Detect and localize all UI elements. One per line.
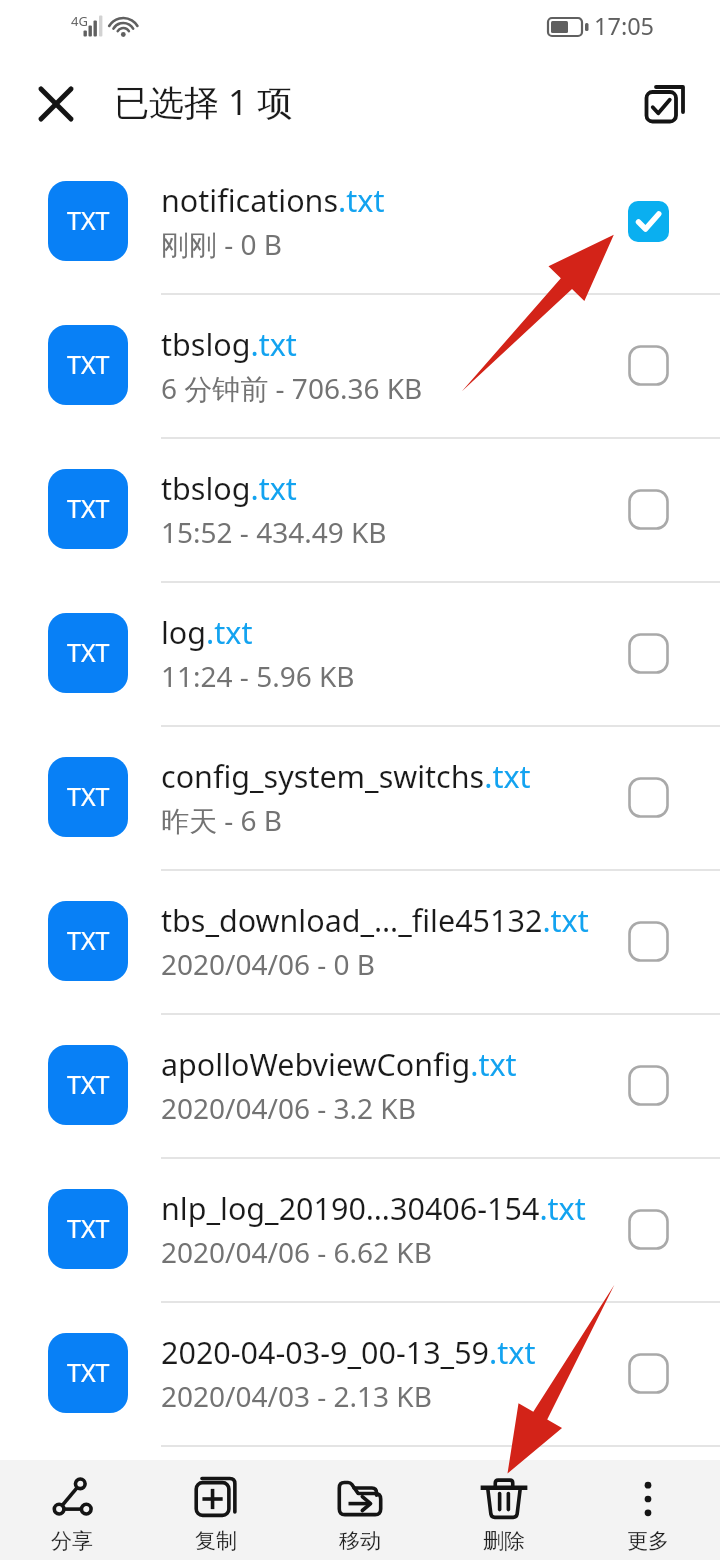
staticText: TXT [67,779,110,813]
staticText: 15:52 - 434.49 KB [161,513,387,551]
staticText: notifications.txt [161,179,385,221]
staticText: TXT [67,347,110,381]
button[interactable]: Select all [633,73,697,137]
staticText: 2020-04-03-9_00-13_59.txt [161,1331,536,1373]
button[interactable]: Select file [608,901,688,981]
staticText: 已选择 1 项 [114,78,293,126]
staticText: tbs_download_…_file45132.txt [161,899,589,941]
staticText: tbslog.txt [161,467,297,509]
staticText: 17:05 [594,10,655,42]
button[interactable]: Close [24,72,88,136]
staticText: 6 分钟前 - 706.36 KB [161,369,423,407]
button[interactable]: Select file [608,325,688,405]
staticText: tbslog.txt [161,323,297,365]
staticText: TXT [67,1355,110,1389]
button[interactable]: Select file [608,1189,688,1269]
button[interactable]: TXT [0,1013,720,1157]
button[interactable]: TXT [0,725,720,869]
staticText: TXT [67,1211,110,1245]
button[interactable]: 分享 [0,1460,144,1560]
button[interactable]: TXT [0,149,720,293]
button[interactable]: TXT [0,1157,720,1301]
button[interactable]: 移动 [288,1460,432,1560]
staticText: TXT [67,203,110,237]
staticText: 分享 [51,1528,93,1554]
staticText: 2020/04/06 - 6.62 KB [161,1233,432,1271]
button[interactable]: Select file [608,757,688,837]
staticText: 删除 [483,1528,525,1554]
button[interactable]: 复制 [144,1460,288,1560]
staticText: 4G [71,12,88,30]
staticText: log.txt [161,611,253,653]
staticText: apolloWebviewConfig.txt [161,1043,517,1085]
staticText: TXT [67,923,110,957]
button[interactable]: Select file [608,613,688,693]
staticText: 2020/04/06 - 3.2 KB [161,1089,416,1127]
button[interactable]: Select file [608,1333,688,1413]
staticText: TXT [67,491,110,525]
button[interactable]: TXT [0,437,720,581]
staticText: TXT [67,635,110,669]
staticText: TXT [67,1067,110,1101]
button[interactable]: 更多 [576,1460,720,1560]
staticText: nlp_log_20190…30406-154.txt [161,1187,586,1229]
button[interactable]: 删除 [432,1460,576,1560]
staticText: config_system_switchs.txt [161,755,531,797]
staticText: 2020/04/03 - 2.13 KB [161,1377,432,1415]
staticText: 11:24 - 5.96 KB [161,657,355,695]
staticText: 2020/04/06 - 0 B [161,945,376,983]
button[interactable]: TXT [0,869,720,1013]
staticText: 刚刚 - 0 B [161,225,283,263]
staticText: 移动 [339,1528,381,1554]
button[interactable]: Select file [608,1045,688,1125]
button[interactable]: TXT [0,293,720,437]
staticText: 昨天 - 6 B [161,801,283,839]
button[interactable]: Select file [608,469,688,549]
button[interactable]: TXT [0,581,720,725]
staticText: 更多 [627,1528,669,1554]
staticText: 复制 [195,1528,237,1554]
button[interactable]: TXT [0,1301,720,1445]
button[interactable]: Select file [608,181,688,261]
